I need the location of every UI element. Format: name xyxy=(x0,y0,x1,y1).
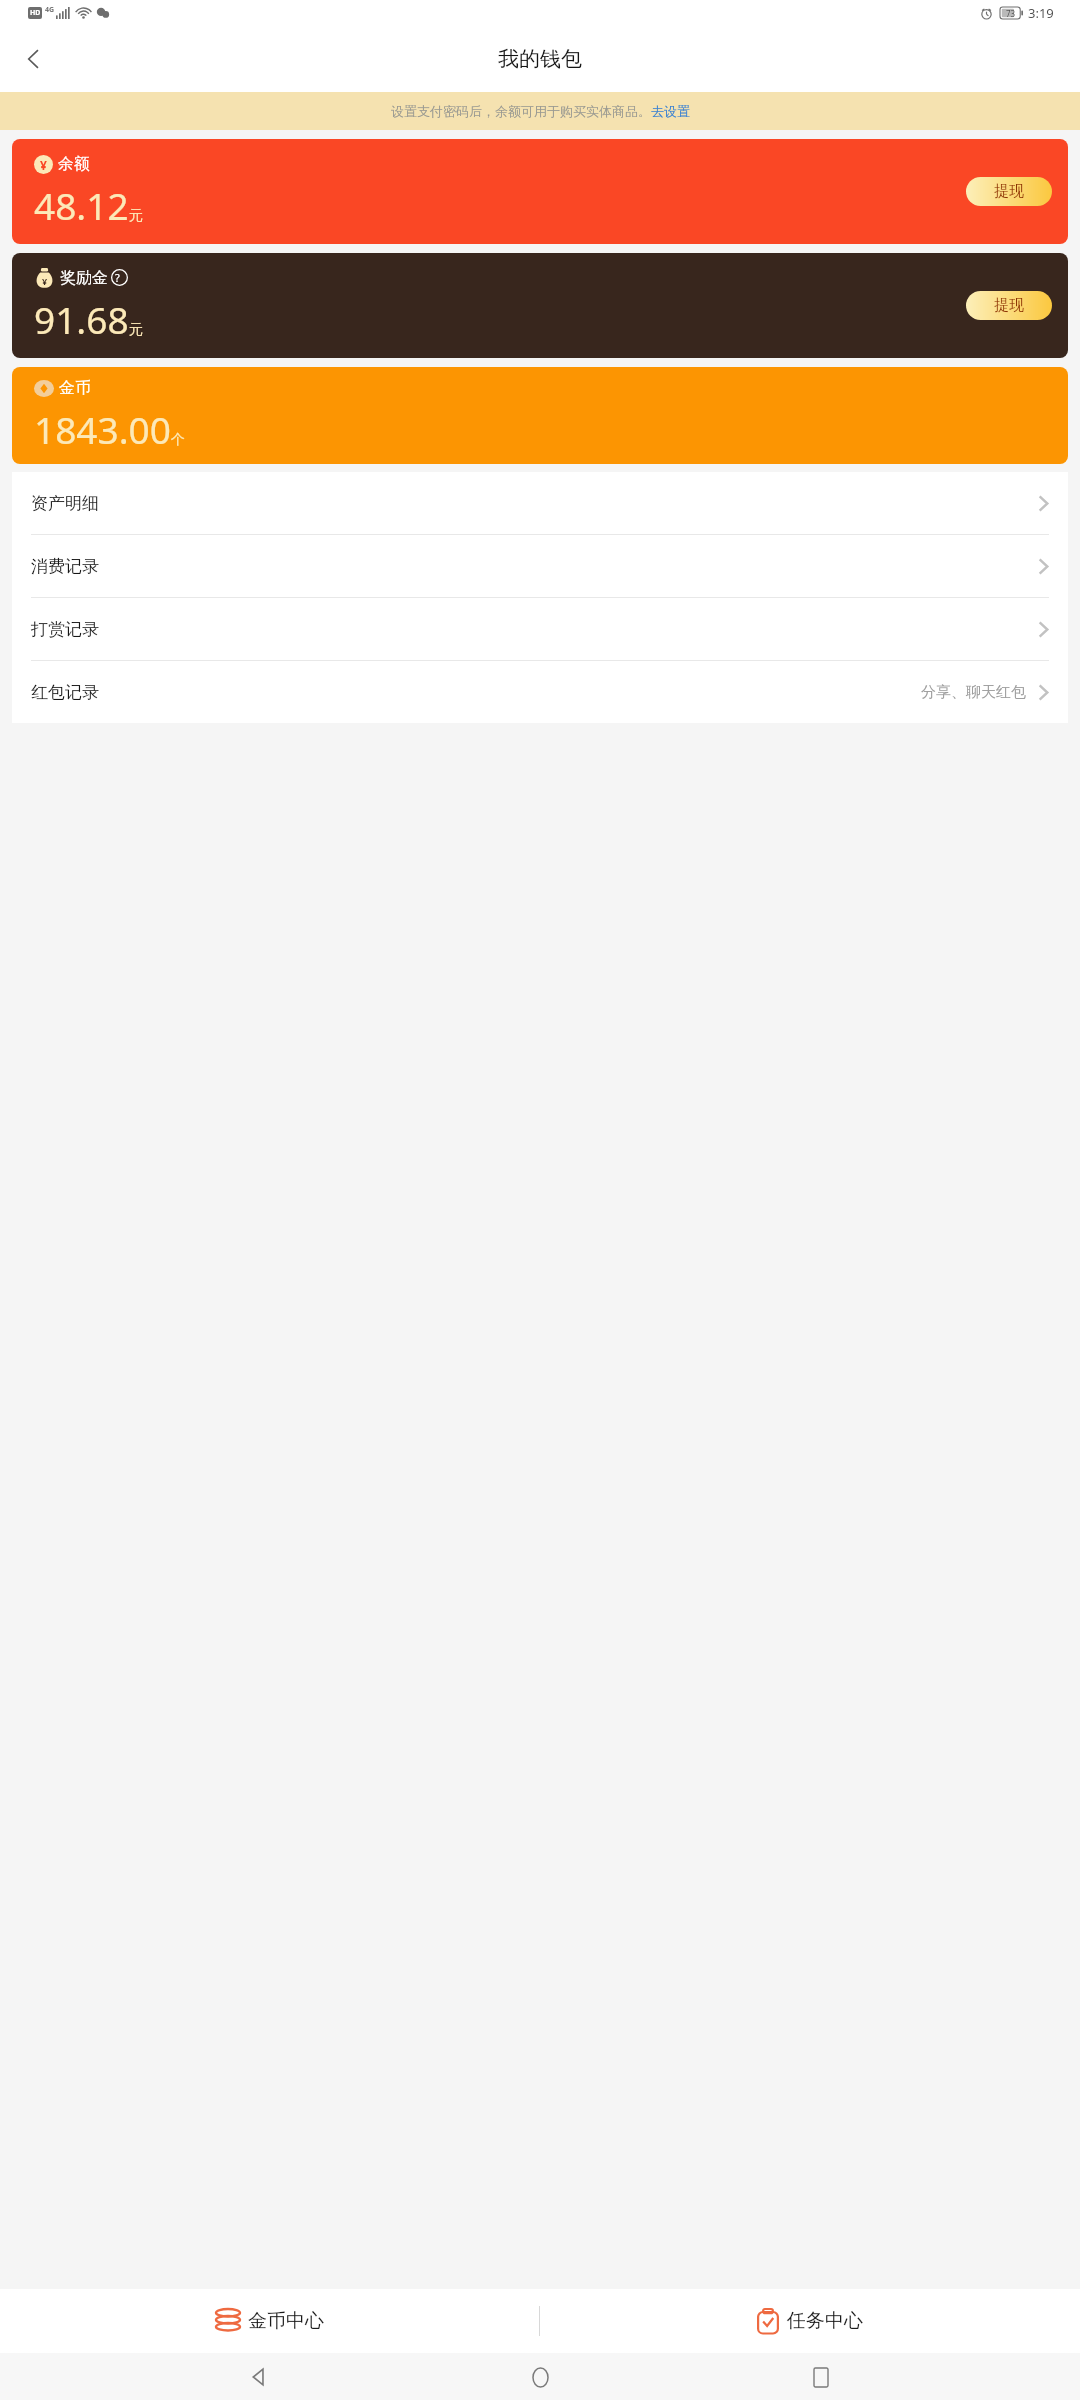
staticText: ? xyxy=(115,270,120,285)
staticText: 设置支付密码后，余额可用于购买实体商品。 xyxy=(391,103,651,119)
button[interactable]: 资产明细 xyxy=(12,472,1068,535)
staticText: ¥ xyxy=(42,275,48,287)
staticText: 分享、聊天红包 xyxy=(921,683,1026,702)
staticText: 提现 xyxy=(994,296,1024,315)
staticText: 任务中心 xyxy=(787,2309,863,2333)
button[interactable]: 返回 xyxy=(10,35,58,83)
button[interactable]: ¥ xyxy=(12,253,1068,358)
staticText: 提现 xyxy=(994,182,1024,201)
staticText: 元 xyxy=(129,321,143,339)
staticText: 打赏记录 xyxy=(31,619,99,640)
button[interactable]: 提现 xyxy=(966,177,1052,206)
staticText: HD xyxy=(30,8,41,18)
staticText: 去设置 xyxy=(651,103,690,119)
staticText: 3:19 xyxy=(1028,4,1054,22)
button[interactable]: 返回 xyxy=(237,2355,281,2399)
staticText: 奖励金 xyxy=(60,268,108,288)
button[interactable]: 主屏幕 xyxy=(518,2355,562,2399)
staticText: 4G xyxy=(45,5,55,15)
button[interactable]: 金币中心 xyxy=(0,2289,539,2353)
button[interactable]: 红包记录 xyxy=(12,661,1068,723)
staticText: 金币 xyxy=(59,378,91,398)
button[interactable]: 设置支付密码后，余额可用于购买实体商品。 xyxy=(0,92,1080,130)
button[interactable]: ¥ xyxy=(12,139,1068,244)
staticText: 元 xyxy=(129,207,143,225)
staticText: 红包记录 xyxy=(31,682,99,703)
staticText: 91.68 xyxy=(34,294,129,344)
staticText: 金币中心 xyxy=(248,2309,324,2333)
button[interactable]: 金币 xyxy=(12,367,1068,464)
button[interactable]: 打赏记录 xyxy=(12,598,1068,661)
button[interactable]: 任务中心 xyxy=(540,2289,1080,2353)
staticText: ¥ xyxy=(40,157,47,173)
button[interactable]: 提现 xyxy=(966,291,1052,320)
button[interactable]: 消费记录 xyxy=(12,535,1068,598)
staticText: 资产明细 xyxy=(31,493,99,514)
button[interactable]: 最近任务 xyxy=(799,2355,843,2399)
staticText: 48.12 xyxy=(34,180,129,230)
staticText: 个 xyxy=(171,431,185,449)
staticText: 我的钱包 xyxy=(498,46,582,72)
staticText: 1843.00 xyxy=(34,404,171,454)
staticText: 消费记录 xyxy=(31,556,99,577)
staticText: 余额 xyxy=(58,154,90,174)
staticText: 73 xyxy=(1006,8,1016,19)
